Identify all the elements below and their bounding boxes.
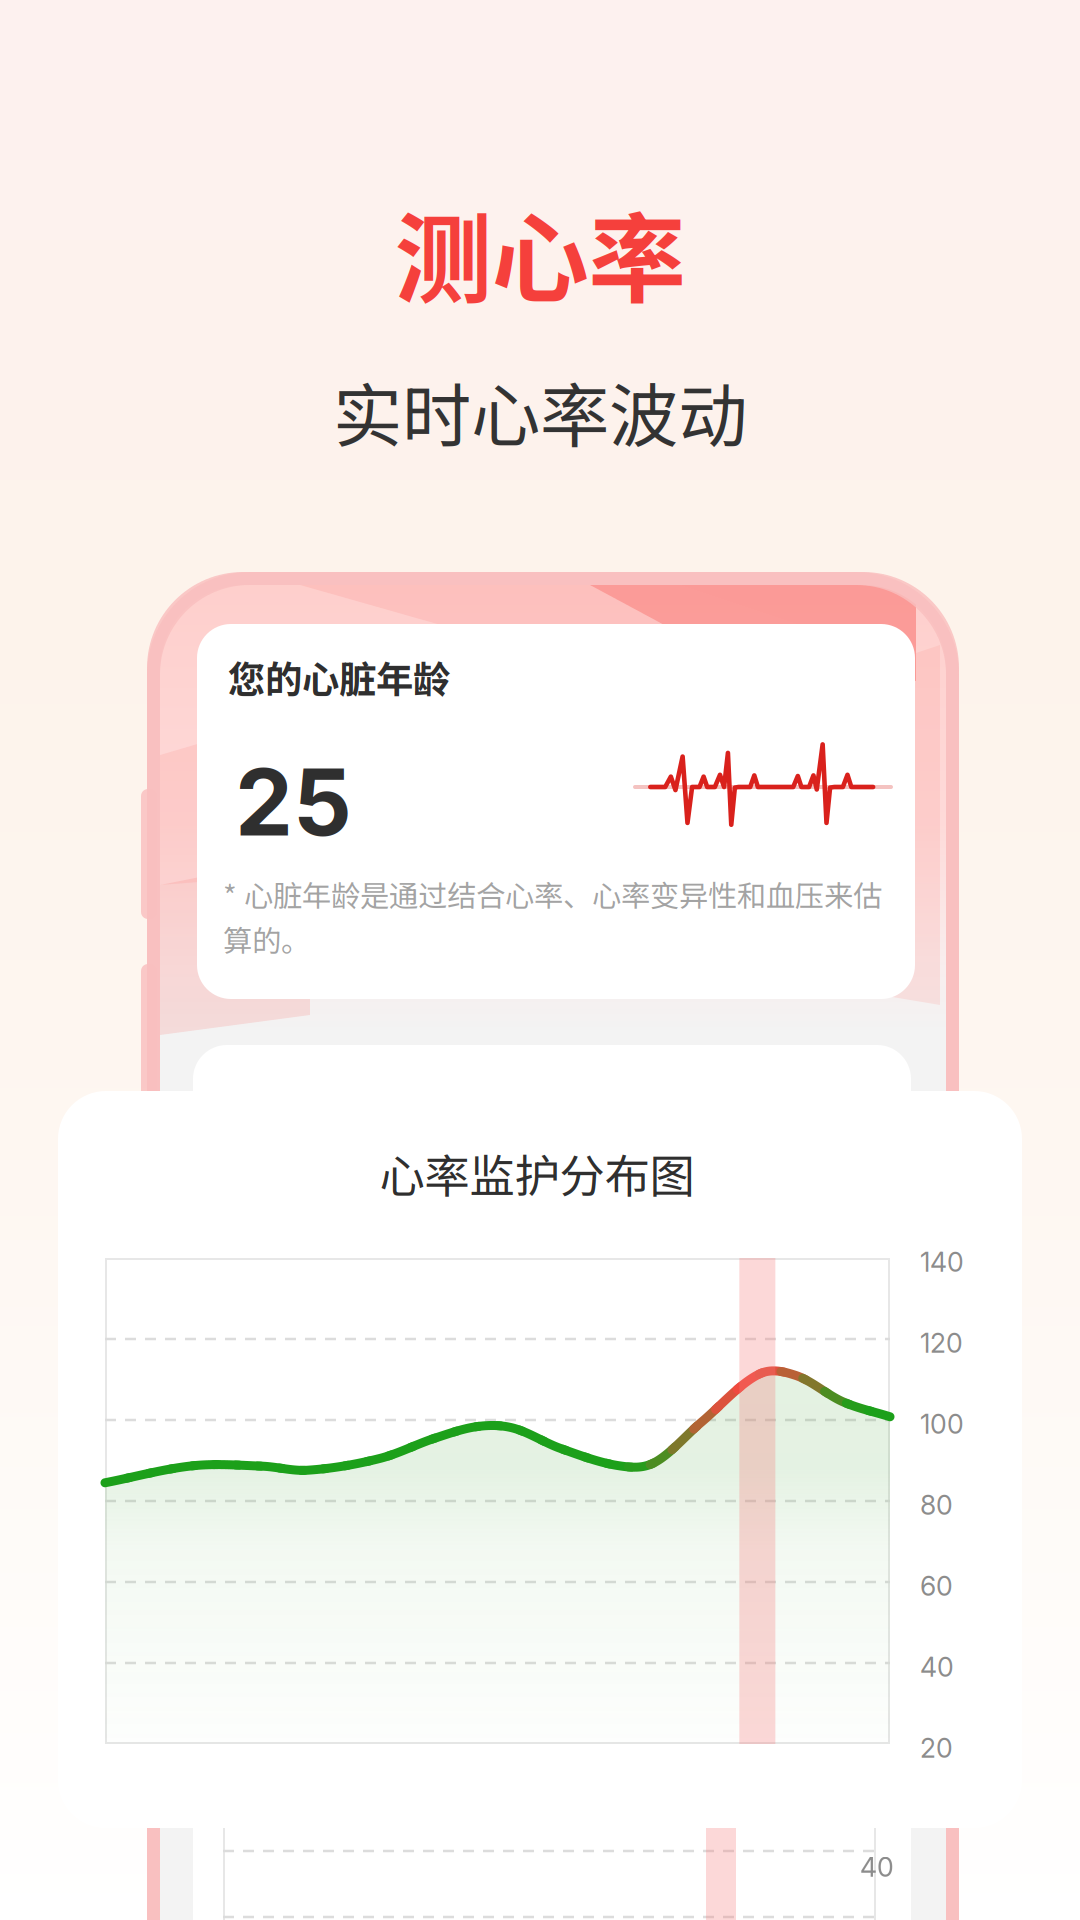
staticText: * 心脏年龄是通过结合心率、心率变异性和血压来估 (223, 873, 882, 915)
staticText: 实时心率波动 (333, 361, 747, 461)
staticText: 算的。 (223, 918, 310, 960)
staticText: 25 (235, 746, 352, 858)
staticText: 测心率 (394, 181, 685, 322)
staticText: 20 (860, 1917, 893, 1920)
staticText: 100 (920, 1408, 964, 1440)
staticText: 您的心脏年龄 (228, 650, 450, 704)
staticText: 心率监护分布图 (379, 1140, 694, 1206)
staticText: 120 (920, 1327, 963, 1359)
staticText: 140 (920, 1246, 964, 1278)
staticText: 20 (920, 1732, 953, 1764)
staticText: 40 (860, 1851, 894, 1883)
staticText: 80 (920, 1489, 953, 1521)
staticText: 60 (920, 1570, 953, 1602)
staticText: 40 (920, 1651, 954, 1683)
